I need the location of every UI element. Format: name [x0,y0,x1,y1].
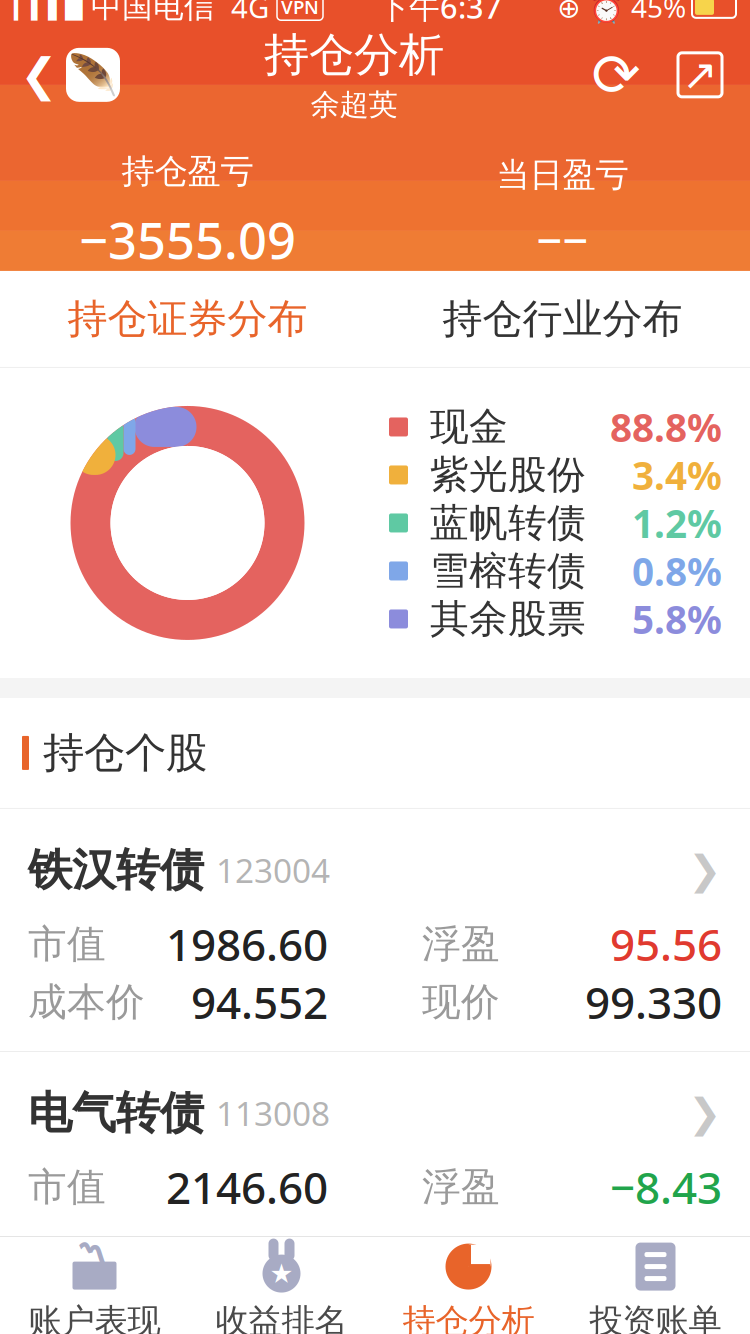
staticText: 其余股票 [430,595,586,643]
staticText: ▎▍▌█ [14,0,82,20]
staticText: 〽 [74,1241,114,1280]
staticText: ❮ [20,49,58,101]
staticText: 94.552 [191,973,328,1031]
staticText: 浮盈 [422,920,500,968]
button[interactable]: 分享 [672,47,728,103]
staticText: 中国电信 [82,0,215,26]
button[interactable]: 电气转债 [0,1052,750,1236]
staticText: 下午6:37 [378,0,502,27]
staticText: 铁汉转债 [28,843,204,897]
staticText: 持仓个股 [43,728,207,778]
staticText: 账户表现 [28,1301,160,1334]
button[interactable]: 投资账单 [562,1237,749,1334]
staticText: 现金 [430,403,508,451]
staticText: 持仓行业分布 [442,294,682,343]
staticText: 市值 [28,920,106,968]
staticText: 88.8% [610,401,722,453]
staticText: ❯ [688,1090,722,1136]
button[interactable]: 持仓行业分布 [375,271,750,367]
staticText: 雪榕转债 [430,547,586,595]
staticText: 🪶 [68,52,118,98]
staticText: ⟳ [591,42,640,108]
staticText: 收益排名 [215,1301,347,1334]
button[interactable]: 返回 [0,42,120,108]
staticText: ★ [269,1258,293,1289]
staticText: ⊕ ⏰ 45% [557,0,686,26]
staticText: 蓝帆转债 [430,499,586,547]
staticText: −− [536,209,588,269]
staticText: 3.4% [632,449,722,501]
button[interactable]: 持仓证券分布 [0,271,375,367]
button[interactable]: 持仓分析 [375,1237,562,1334]
staticText: 2146.60 [166,1158,328,1216]
button[interactable]: ★ [188,1237,375,1334]
staticText: 1.2% [632,497,722,549]
button[interactable]: 铁汉转债 [0,809,750,1051]
staticText: 113008 [216,1091,330,1135]
staticText: 现价 [422,978,500,1026]
staticText: ↗ [682,51,718,99]
staticText: 余超英 [310,87,397,123]
button[interactable]: 刷新 [588,47,644,103]
staticText: 99.330 [585,973,722,1031]
staticText: −8.43 [610,1158,722,1216]
staticText: 持仓分析 [264,27,444,83]
staticText: 电气转债 [28,1086,204,1140]
staticText: 当日盈亏 [496,154,628,195]
staticText: 1986.60 [166,915,328,973]
staticText: ❯ [688,847,722,893]
staticText: 持仓盈亏 [121,151,253,192]
staticText: 5.8% [632,593,722,645]
staticText: −3555.09 [79,206,296,273]
staticText: 95.56 [610,915,722,973]
staticText: 紫光股份 [430,451,586,499]
staticText: 浮盈 [422,1163,500,1211]
staticText: 投资账单 [589,1301,721,1334]
staticText: VPN [281,0,319,19]
staticText: 成本价 [28,978,145,1026]
staticText: 持仓分析 [402,1301,534,1334]
button[interactable]: 〽 [1,1237,188,1334]
staticText: 4G [215,0,277,26]
staticText: 市值 [28,1163,106,1211]
staticText: 持仓证券分布 [67,294,307,343]
staticText: 0.8% [632,545,722,597]
staticText: 123004 [216,848,330,892]
